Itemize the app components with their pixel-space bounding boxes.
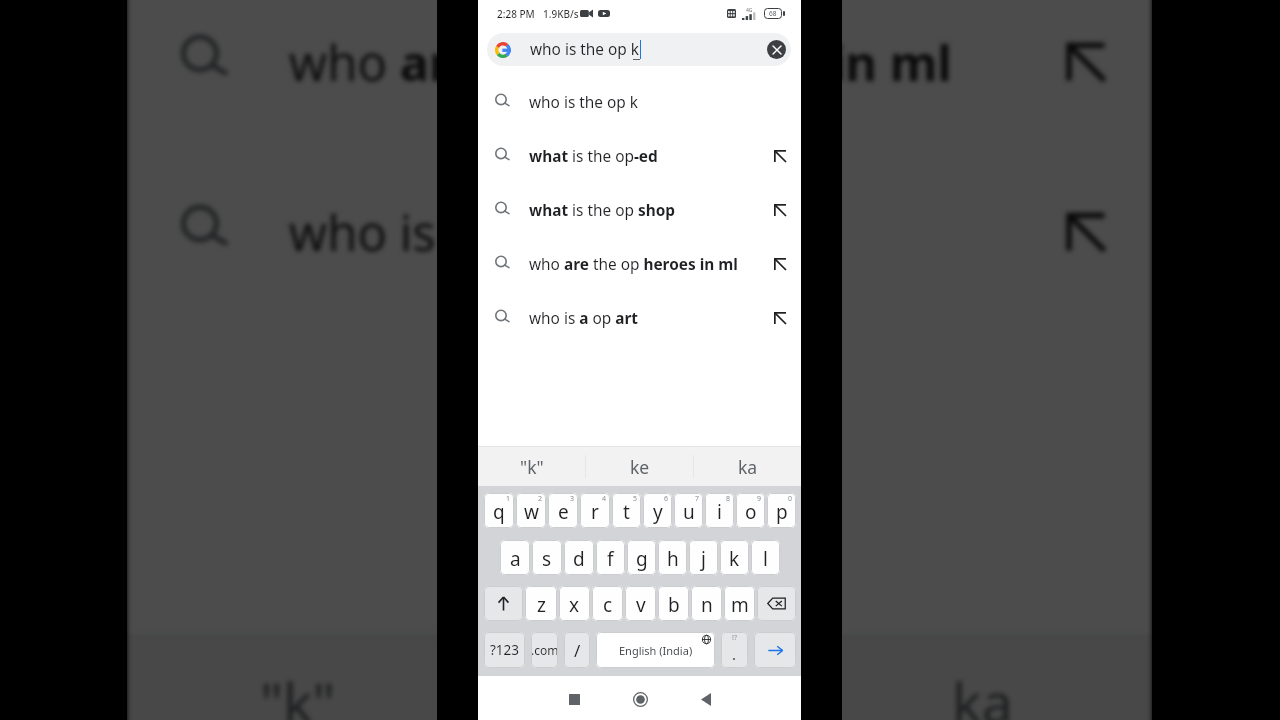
staticText: what is the op-ed — [529, 146, 658, 167]
button[interactable]: v — [625, 586, 656, 621]
button[interactable]: who is the op k — [487, 33, 791, 66]
staticText: f — [607, 546, 614, 572]
button[interactable]: Shift — [484, 586, 523, 621]
button[interactable]: ka — [694, 447, 801, 486]
button[interactable]: h — [658, 540, 687, 575]
staticText: 4G — [746, 7, 753, 14]
button[interactable]: l — [751, 540, 780, 575]
staticText: what is the op shop — [529, 200, 676, 221]
button[interactable]: ke — [470, 638, 809, 720]
button[interactable]: Insert suggestion — [767, 197, 793, 223]
button[interactable]: Insert suggestion — [1044, 191, 1127, 273]
button[interactable]: 3 — [548, 493, 578, 528]
staticText: English (India) — [619, 643, 693, 658]
button[interactable]: .com — [531, 632, 558, 668]
button[interactable]: k — [720, 540, 749, 575]
staticText: i — [717, 499, 722, 525]
staticText: s — [542, 546, 552, 572]
staticText: 1 — [506, 494, 511, 504]
staticText: q — [493, 499, 505, 525]
button[interactable]: 1 — [484, 493, 514, 528]
button[interactable]: who is a op art — [478, 291, 801, 345]
button[interactable]: Clear — [767, 40, 786, 59]
button[interactable]: who are the op heroes in ml — [478, 237, 801, 291]
button[interactable]: what is the op-ed — [478, 129, 801, 183]
button[interactable]: "k" — [127, 638, 467, 720]
staticText: 8 — [726, 494, 731, 504]
button[interactable]: 7 — [674, 493, 703, 528]
staticText: who are the op heroes in ml — [289, 30, 952, 96]
button[interactable]: who is a op art — [127, 147, 1152, 317]
button[interactable]: what is the op shop — [478, 183, 801, 237]
staticText: a — [510, 546, 521, 572]
staticText: r — [591, 499, 599, 525]
button[interactable]: s — [532, 540, 562, 575]
staticText: p — [776, 499, 788, 525]
staticText: 3 — [570, 494, 575, 504]
button[interactable]: 4 — [580, 493, 610, 528]
staticText: "k" — [520, 455, 544, 479]
staticText: who is the op k — [530, 39, 640, 60]
button[interactable]: Recents — [557, 682, 591, 716]
staticText: d — [573, 546, 585, 572]
staticText: 2:28 PM — [497, 7, 535, 21]
button[interactable]: f — [596, 540, 625, 575]
button[interactable]: x — [559, 586, 590, 621]
button[interactable]: Search — [754, 632, 796, 668]
staticText: m — [731, 592, 749, 618]
staticText: / — [574, 639, 581, 662]
button[interactable]: who is the op k — [478, 75, 801, 129]
staticText: o — [745, 499, 757, 525]
button[interactable]: English (India) — [596, 632, 715, 668]
button[interactable]: g — [627, 540, 656, 575]
button[interactable]: m — [724, 586, 755, 621]
button[interactable]: Insert suggestion — [767, 143, 793, 169]
button[interactable]: ke — [586, 447, 693, 486]
staticText: 2 — [538, 494, 543, 504]
button[interactable]: 0 — [767, 493, 796, 528]
button[interactable]: a — [500, 540, 530, 575]
button[interactable]: 6 — [643, 493, 672, 528]
staticText: u — [683, 499, 695, 525]
staticText: 9 — [757, 494, 762, 504]
button[interactable]: b — [658, 586, 689, 621]
button[interactable]: / — [564, 632, 590, 668]
staticText: v — [636, 592, 646, 618]
staticText: ke — [630, 455, 650, 479]
button[interactable]: Insert suggestion — [1044, 21, 1127, 103]
staticText: e — [558, 499, 569, 525]
staticText: g — [636, 546, 648, 572]
button[interactable]: Insert suggestion — [767, 305, 793, 331]
button[interactable]: Back — [689, 682, 723, 716]
staticText: z — [537, 592, 546, 618]
button[interactable]: n — [691, 586, 722, 621]
staticText: ka — [952, 663, 1016, 720]
button[interactable]: j — [689, 540, 718, 575]
staticText: .com — [531, 642, 558, 658]
button[interactable]: 8 — [705, 493, 734, 528]
staticText: ke — [609, 663, 673, 720]
button[interactable]: d — [564, 540, 594, 575]
button[interactable]: Backspace — [757, 586, 796, 621]
staticText: w — [524, 499, 539, 525]
button[interactable]: "k" — [478, 447, 585, 486]
staticText: c — [603, 592, 613, 618]
button[interactable]: c — [592, 586, 623, 621]
button[interactable]: 9 — [736, 493, 765, 528]
button[interactable]: z — [525, 586, 557, 621]
staticText: who is the op k — [529, 92, 639, 113]
button[interactable]: !? — [721, 632, 748, 668]
button[interactable]: Insert suggestion — [767, 251, 793, 277]
staticText: who is a op art — [529, 308, 639, 329]
button[interactable]: 2 — [516, 493, 546, 528]
button[interactable]: who are the op heroes in ml — [127, 0, 1152, 147]
staticText: k — [729, 546, 740, 572]
button[interactable]: Home — [623, 682, 657, 716]
staticText: "k" — [260, 663, 336, 720]
button[interactable]: ka — [812, 638, 1152, 720]
staticText: l — [763, 546, 768, 572]
staticText: h — [667, 546, 679, 572]
staticText: . — [732, 644, 737, 664]
button[interactable]: 5 — [612, 493, 641, 528]
button[interactable]: ?123 — [484, 632, 525, 668]
